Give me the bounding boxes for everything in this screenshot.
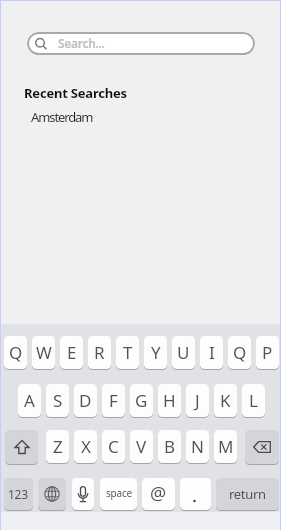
button[interactable]: E [60,336,83,369]
button[interactable]: Q [228,336,251,369]
button[interactable]: W [32,336,55,369]
button[interactable]: T [116,336,139,369]
staticText: F [109,389,118,412]
staticText: Y [151,341,161,364]
button[interactable]: P [256,336,279,369]
staticText: R [94,341,105,364]
staticText: K [220,389,231,412]
staticText: G [135,389,148,412]
button[interactable]: G [130,384,153,417]
staticText: Amsterdam [31,108,93,126]
staticText: N [191,435,204,458]
button[interactable] [245,430,279,464]
staticText: C [108,435,119,458]
button[interactable]: F [102,384,125,417]
button[interactable]: Y [144,336,167,369]
staticText: @ [150,481,167,506]
staticText: J [195,389,200,412]
staticText: Z [53,435,63,458]
staticText: Q [9,341,23,364]
staticText: S [53,389,63,412]
button[interactable]: @ [142,478,175,510]
button[interactable]: H [158,384,181,417]
staticText: Q [233,341,247,364]
button[interactable]: space [100,478,137,510]
button[interactable] [38,478,66,510]
staticText: E [67,341,77,364]
staticText: D [79,389,92,412]
staticText: L [249,389,258,412]
button[interactable]: I [200,336,223,369]
button[interactable]: N [186,430,209,463]
staticText: H [163,389,176,412]
staticText: V [136,435,147,458]
button[interactable]: S [46,384,69,417]
button[interactable]: R [88,336,111,369]
button[interactable]: J [186,384,209,417]
button[interactable]: D [74,384,97,417]
staticText: Recent Searches [24,84,127,102]
button[interactable]: 123 [4,478,33,510]
staticText: 123 [8,486,28,502]
staticText: I [209,341,215,364]
staticText: return [229,485,266,503]
staticText: M [218,435,234,458]
button[interactable]: K [214,384,237,417]
button[interactable]: return [216,478,279,510]
staticText: W [36,341,52,364]
button[interactable]: C [102,430,125,463]
staticText: space [106,486,132,500]
button[interactable]: L [242,384,265,417]
staticText: X [81,435,91,458]
button[interactable] [5,430,38,464]
button[interactable] [180,478,211,510]
staticText: P [262,341,273,364]
button[interactable]: Q [4,336,27,369]
button[interactable]: Amsterdam [31,108,93,126]
button[interactable]: U [172,336,195,369]
button[interactable] [72,478,94,510]
staticText: T [123,341,133,364]
staticText: U [177,341,190,364]
staticText: A [24,389,35,412]
staticText: Search... [58,35,105,51]
button[interactable]: V [130,430,153,463]
button[interactable]: A [18,384,41,417]
button[interactable]: M [214,430,237,463]
button[interactable]: X [74,430,97,463]
button[interactable]: B [158,430,181,463]
staticText: B [164,435,176,458]
button[interactable]: Z [46,430,69,463]
button[interactable]: Search... [27,32,255,55]
